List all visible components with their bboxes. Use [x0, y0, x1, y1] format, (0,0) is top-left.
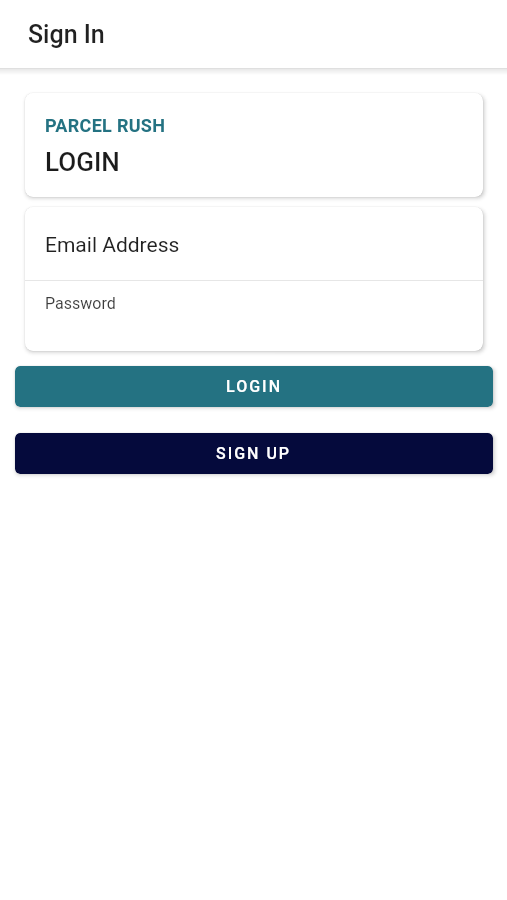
button[interactable]: LOGIN [15, 366, 493, 407]
button[interactable]: Email Address [25, 207, 483, 280]
button[interactable]: Password [25, 281, 483, 351]
staticText: LOGIN [226, 377, 282, 396]
staticText: LOGIN [45, 147, 120, 177]
staticText: Sign In [28, 20, 105, 49]
staticText: PARCEL RUSH [45, 115, 166, 136]
staticText: Email Address [45, 233, 180, 258]
staticText: Password [45, 294, 116, 313]
staticText: SIGN UP [216, 444, 292, 463]
button[interactable]: SIGN UP [15, 433, 493, 474]
